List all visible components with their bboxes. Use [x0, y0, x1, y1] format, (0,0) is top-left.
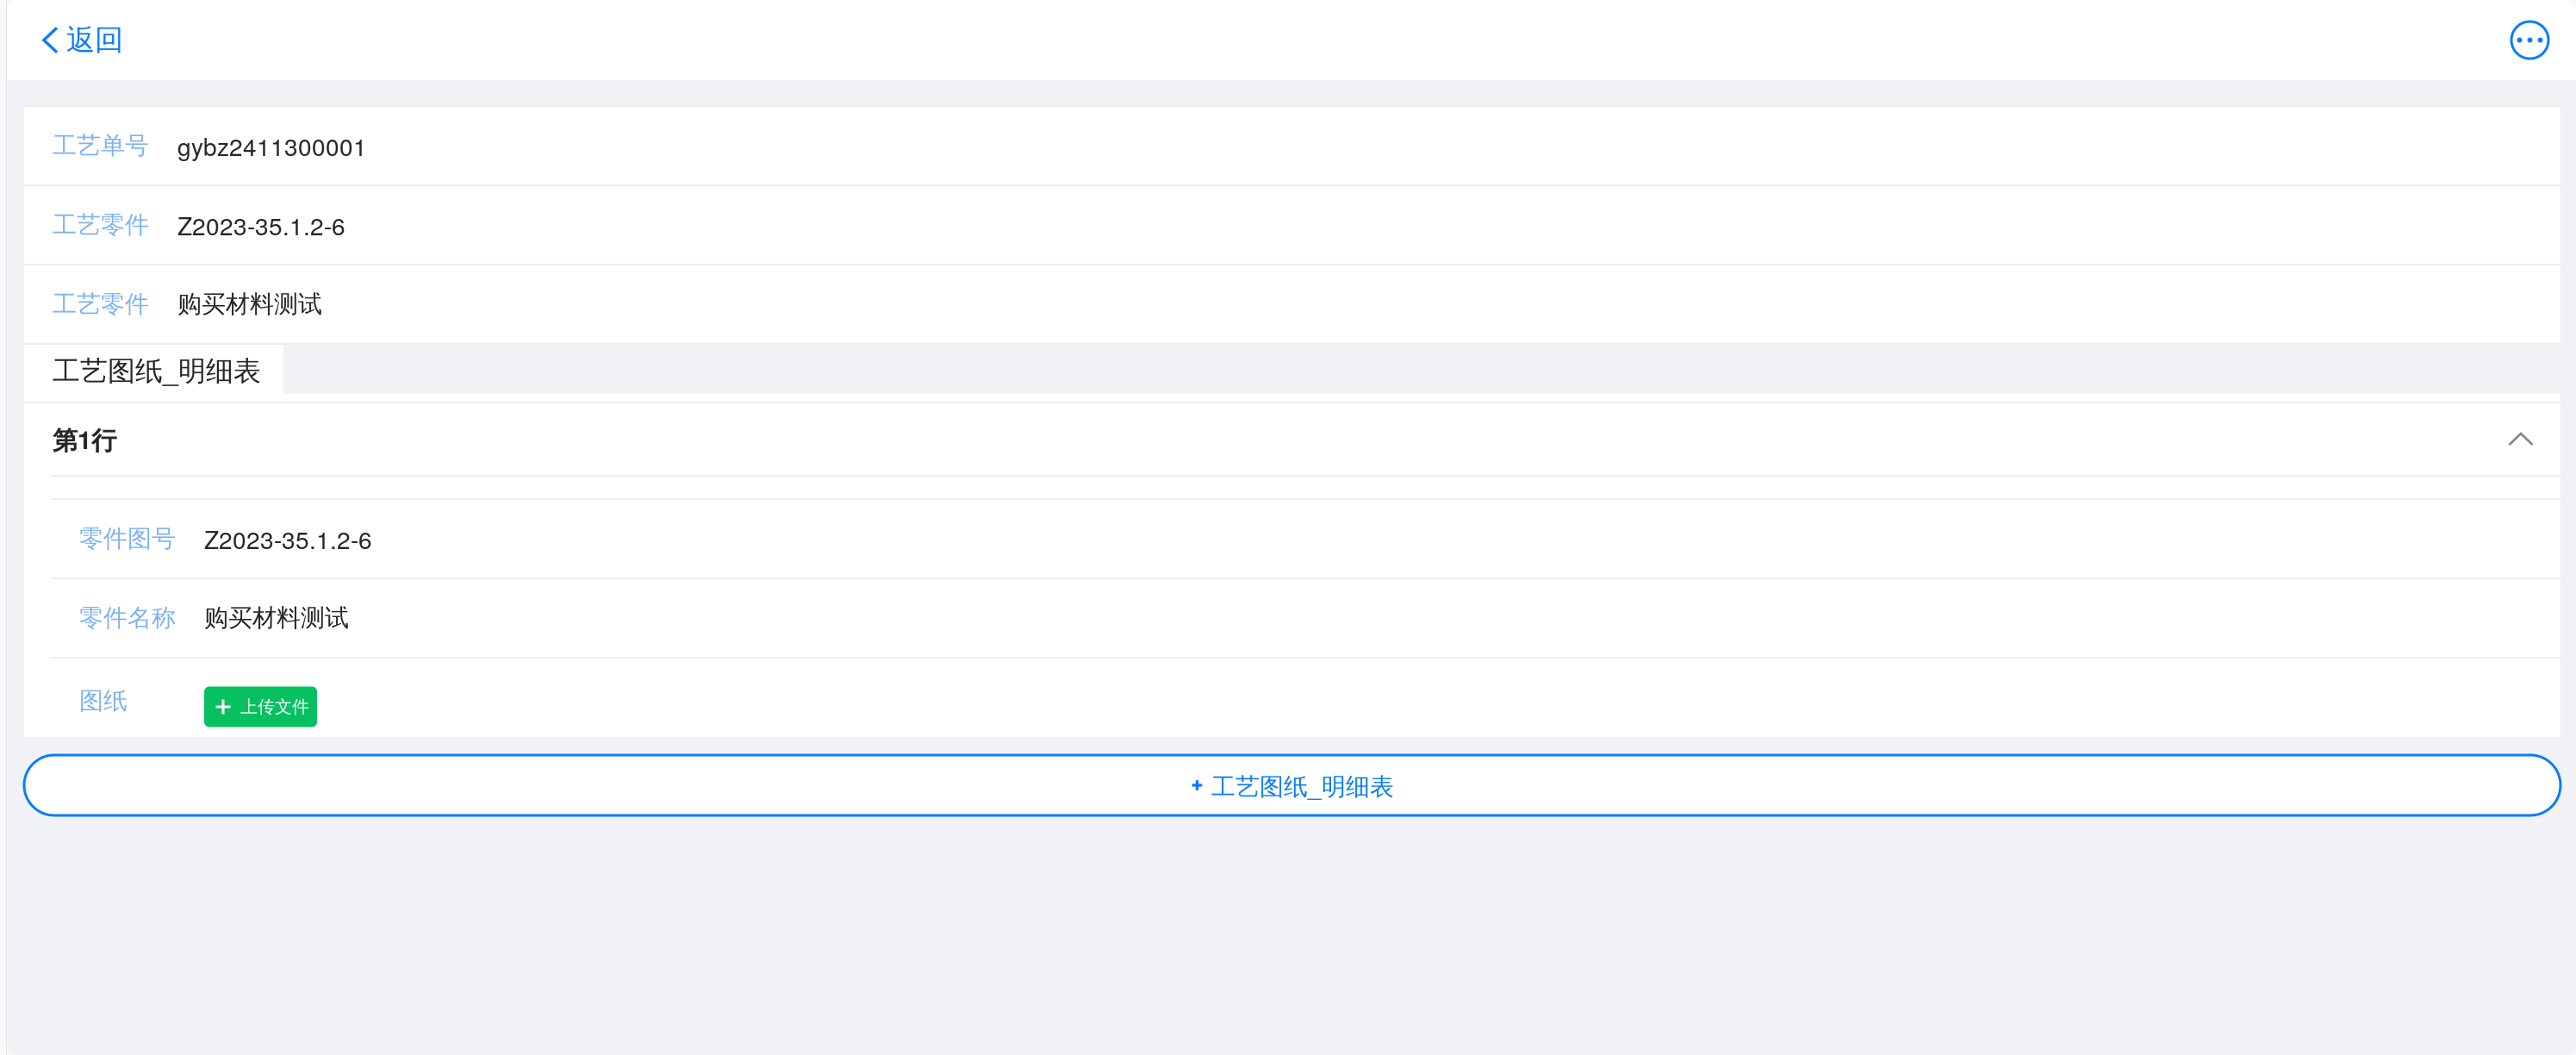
staticText: 零件名称: [79, 603, 176, 633]
staticText: 图纸: [79, 686, 128, 716]
staticText: Z2023-35.1.2-6: [204, 521, 372, 556]
staticText: Z2023-35.1.2-6: [177, 208, 345, 242]
staticText: 返回: [66, 22, 123, 58]
staticText: 第1行: [53, 421, 116, 457]
staticText: 购买材料测试: [204, 603, 349, 633]
staticText: 工艺图纸_明细表: [53, 350, 261, 389]
staticText: 零件图号: [79, 524, 176, 554]
staticText: 购买材料测试: [177, 289, 322, 320]
staticText: gybz2411300001: [177, 128, 367, 163]
button[interactable]: More actions: [2486, 0, 2576, 80]
button[interactable]: 第1行: [24, 403, 2560, 475]
staticText: 工艺单号: [53, 130, 149, 161]
staticText: 工艺图纸_明细表: [1211, 768, 1394, 803]
button[interactable]: 返回: [7, 0, 144, 80]
staticText: 上传文件: [240, 696, 309, 718]
staticText: 工艺零件: [53, 210, 149, 240]
button[interactable]: 工艺图纸_明细表: [24, 755, 2560, 815]
staticText: 工艺零件: [53, 289, 149, 320]
button[interactable]: 上传文件: [204, 668, 317, 727]
